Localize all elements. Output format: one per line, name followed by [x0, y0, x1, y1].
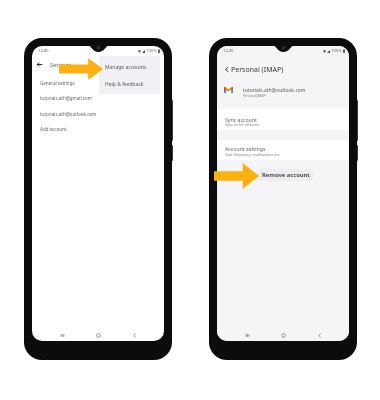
button[interactable]: Home	[92, 329, 104, 341]
staticText: Remove account	[262, 171, 310, 179]
staticText: 100%	[146, 48, 157, 54]
other: Pointer arrow	[214, 163, 259, 189]
button[interactable]: Back	[313, 329, 325, 341]
staticText: Personal (IMAP)	[231, 65, 284, 74]
staticText: Manage accounts	[105, 64, 147, 71]
button[interactable]	[217, 82, 349, 102]
staticText: Personal (IMAP)	[243, 94, 267, 98]
staticText: 100%	[331, 48, 342, 54]
other: Pointer arrow	[59, 58, 103, 80]
button[interactable]: Remove account	[257, 169, 314, 181]
staticText: tutorials.ath@outlook.com	[40, 111, 97, 117]
staticText: General settings	[40, 80, 75, 86]
staticText: Sync account	[225, 116, 257, 123]
button[interactable]	[217, 139, 349, 160]
staticText: Add account	[40, 126, 67, 132]
button[interactable]: tutorials.ath@outlook.com	[32, 106, 164, 122]
button[interactable]: Back	[128, 329, 140, 341]
button[interactable]: Recent apps	[56, 329, 68, 341]
button[interactable]: Add account	[32, 121, 164, 137]
button[interactable]: Recent apps	[241, 329, 253, 341]
button[interactable]: Navigate up	[34, 59, 44, 69]
staticText: 12:45	[38, 48, 49, 54]
button[interactable]: Help & feedback	[99, 76, 160, 92]
staticText: Help & feedback	[105, 81, 144, 88]
button[interactable]: tutorials.ath@gmail.com	[32, 90, 164, 106]
button[interactable]: Manage accounts	[99, 59, 160, 75]
button[interactable]	[217, 109, 349, 130]
staticText: tutorials.ath@outlook.com	[243, 87, 306, 94]
button[interactable]: General settings	[32, 75, 164, 91]
staticText: tutorials.ath@gmail.com	[40, 95, 92, 101]
button[interactable]: Navigate up	[221, 64, 231, 74]
staticText: Sync on for all items	[225, 122, 259, 127]
staticText: Sync frequency, notifications etc.	[225, 152, 281, 157]
staticText: Settings	[50, 61, 72, 69]
staticText: Account settings	[225, 145, 266, 152]
staticText: 12:45	[223, 48, 234, 54]
button[interactable]: Home	[277, 329, 289, 341]
